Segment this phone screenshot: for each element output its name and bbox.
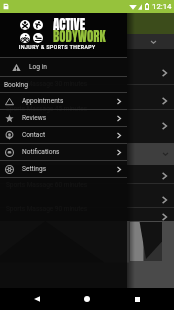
staticText: 12:14	[152, 2, 172, 11]
staticText: Settings	[22, 165, 47, 173]
staticText: Appointments	[22, 97, 64, 105]
staticText: Booking	[4, 81, 28, 89]
button[interactable]: Contact	[0, 127, 127, 143]
button[interactable]: Recent apps	[124, 288, 150, 310]
button[interactable]: Reviews	[0, 110, 127, 126]
staticText: ACTIVE	[53, 15, 86, 35]
staticText: Sports Massage 30 minutes	[6, 80, 88, 88]
button[interactable]: Appointments	[0, 93, 127, 109]
button[interactable]: Log in	[0, 58, 127, 76]
button[interactable]: Settings	[0, 161, 127, 177]
staticText: INJURY & SPORTS THERAPY	[19, 44, 96, 50]
button[interactable]: Back	[24, 288, 50, 310]
button[interactable]: Notifications	[0, 144, 127, 160]
staticText: Reviews	[22, 114, 47, 122]
staticText: BODYWORK	[53, 27, 106, 47]
staticText: Contact	[22, 131, 46, 139]
button[interactable]: Home	[74, 288, 100, 310]
staticText: Sports Massage 45 minutes	[6, 105, 88, 113]
staticText: Notifications	[22, 148, 60, 156]
staticText: Log in	[29, 63, 47, 71]
